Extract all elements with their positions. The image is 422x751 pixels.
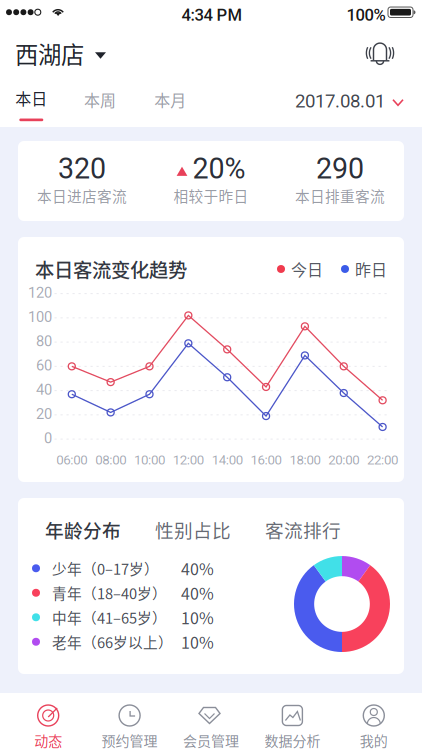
staticText: 动态: [34, 730, 62, 750]
staticText: 10%: [181, 630, 214, 653]
staticText: 20: [36, 405, 52, 423]
staticText: 本日: [15, 86, 47, 110]
staticText: 20:00: [328, 452, 359, 468]
staticText: 40: [36, 381, 52, 398]
staticText: 22:00: [367, 452, 398, 468]
staticText: 18:00: [289, 452, 320, 468]
staticText: 相较于昨日: [173, 185, 248, 206]
staticText: 12:00: [173, 452, 204, 468]
staticText: 60: [36, 357, 52, 374]
button[interactable]: 动态: [7, 693, 89, 751]
button[interactable]: 本周: [69, 88, 131, 128]
staticText: 本日进店客流: [37, 185, 127, 206]
staticText: 本月: [154, 88, 186, 111]
staticText: 0: [44, 430, 52, 447]
staticText: 青年（18–40岁）: [52, 582, 167, 603]
staticText: 西湖店: [15, 37, 84, 70]
staticText: 老年（66岁以上）: [52, 631, 173, 652]
staticText: 本日客流变化趋势: [35, 255, 187, 283]
staticText: 320: [58, 152, 106, 186]
staticText: 2017.08.01: [295, 90, 385, 112]
staticText: 4:34 PM: [181, 5, 242, 25]
staticText: 20%: [192, 152, 245, 186]
staticText: 少年（0–17岁）: [52, 558, 159, 579]
button[interactable]: 预约管理: [89, 693, 170, 751]
staticText: 今日: [291, 257, 323, 281]
staticText: 本周: [84, 88, 116, 111]
staticText: 客流排行: [265, 516, 341, 543]
button[interactable]: 本日: [0, 88, 62, 128]
staticText: 06:00: [56, 452, 87, 468]
staticText: 会员管理: [183, 730, 239, 750]
staticText: 本日排重客流: [295, 185, 385, 206]
staticText: 中年（41–65岁）: [52, 607, 167, 628]
button[interactable]: 我的: [333, 693, 414, 751]
staticText: 290: [316, 152, 364, 186]
staticText: 数据分析: [264, 730, 320, 750]
staticText: 40%: [181, 581, 214, 604]
button[interactable]: 会员管理: [170, 693, 252, 751]
staticText: 我的: [360, 730, 388, 750]
staticText: 08:00: [95, 452, 126, 468]
staticText: 14:00: [212, 452, 243, 468]
staticText: 100: [28, 308, 52, 326]
button[interactable]: 2017.08.01: [268, 86, 403, 116]
staticText: 10%: [181, 606, 214, 629]
button[interactable]: 西湖店: [15, 36, 135, 70]
staticText: 性别占比: [155, 516, 231, 543]
staticText: 昨日: [355, 257, 387, 281]
staticText: 100%: [346, 5, 385, 25]
staticText: 年龄分布: [45, 516, 121, 543]
staticText: 预约管理: [102, 730, 158, 750]
staticText: 10:00: [134, 452, 165, 468]
staticText: 80: [36, 333, 52, 350]
staticText: 16:00: [251, 452, 282, 468]
staticText: 40%: [181, 557, 214, 580]
button[interactable]: Notifications: [356, 33, 404, 73]
button[interactable]: 本月: [139, 88, 201, 128]
button[interactable]: 数据分析: [252, 693, 333, 751]
staticText: 120: [28, 284, 52, 301]
